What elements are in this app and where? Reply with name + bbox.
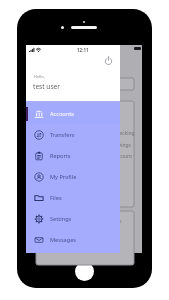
button[interactable]: My Profile <box>26 166 120 187</box>
staticText: Transfers <box>50 131 75 139</box>
button[interactable]: Log out <box>101 53 115 67</box>
staticText: test user <box>33 82 61 91</box>
staticText: Reports <box>50 152 71 160</box>
staticText: Pay <box>113 218 122 225</box>
staticText: Bill <box>113 235 121 242</box>
staticText: My Profile <box>50 173 77 181</box>
button[interactable]: Reports <box>26 145 120 166</box>
staticText: Checking <box>113 130 135 137</box>
button[interactable]: Transfers <box>26 124 120 145</box>
staticText: Messages <box>50 236 76 244</box>
staticText: Savings <box>113 142 131 149</box>
staticText: Hello, <box>34 74 45 79</box>
button[interactable]: Settings <box>26 208 120 229</box>
staticText: Accounts <box>50 110 74 118</box>
staticText: Settings <box>50 215 72 223</box>
button[interactable]: Accounts <box>26 103 120 124</box>
staticText: Account <box>113 153 133 160</box>
staticText: 12:11 <box>77 47 89 53</box>
button[interactable]: Files <box>26 187 120 208</box>
staticText: Files <box>50 194 62 202</box>
button[interactable]: Messages <box>26 229 120 250</box>
